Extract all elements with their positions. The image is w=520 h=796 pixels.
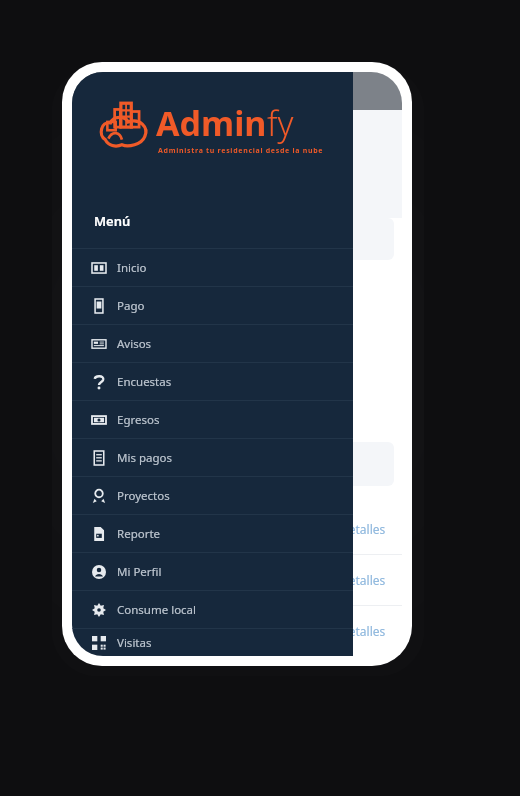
staticText: Reporte (117, 526, 161, 542)
button[interactable]: Encuestas (72, 363, 353, 400)
button[interactable]: Egresos (72, 401, 353, 438)
button[interactable]: Mis pagos (72, 439, 353, 476)
button[interactable]: Visitas (72, 629, 353, 656)
button[interactable]: Detalles (340, 572, 386, 588)
staticText: fy (267, 100, 294, 146)
button[interactable]: Detalles (340, 623, 386, 639)
staticText: Admin (156, 100, 267, 146)
button[interactable]: Detalles (340, 521, 386, 537)
staticText: Mi Perfil (117, 564, 162, 580)
staticText: Consume local (117, 602, 197, 618)
staticText: Visitas (117, 635, 152, 651)
staticText: Detalles (340, 623, 386, 639)
button[interactable]: Inicio (72, 249, 353, 286)
staticText: sas) (90, 306, 112, 322)
staticText: Pago (117, 298, 145, 314)
button[interactable]: Avisos (72, 325, 353, 362)
staticText: Encuestas (117, 374, 172, 390)
staticText: Proyectos (117, 488, 170, 504)
staticText: Inicio (117, 260, 147, 276)
staticText: Detalles (340, 521, 386, 537)
staticText: Menú (94, 212, 131, 230)
staticText: ación (90, 280, 121, 296)
button[interactable]: Proyectos (72, 477, 353, 514)
staticText: Mis pagos (117, 450, 172, 466)
button[interactable]: Mi Perfil (72, 553, 353, 590)
staticText: Administra tu residencial desde la nube (158, 146, 324, 156)
button[interactable]: Pago (72, 287, 353, 324)
staticText: Egresos (117, 412, 160, 428)
button[interactable]: Reporte (72, 515, 353, 552)
staticText: Detalles (340, 572, 386, 588)
staticText: Avisos (117, 336, 152, 352)
button[interactable]: Consume local (72, 591, 353, 628)
